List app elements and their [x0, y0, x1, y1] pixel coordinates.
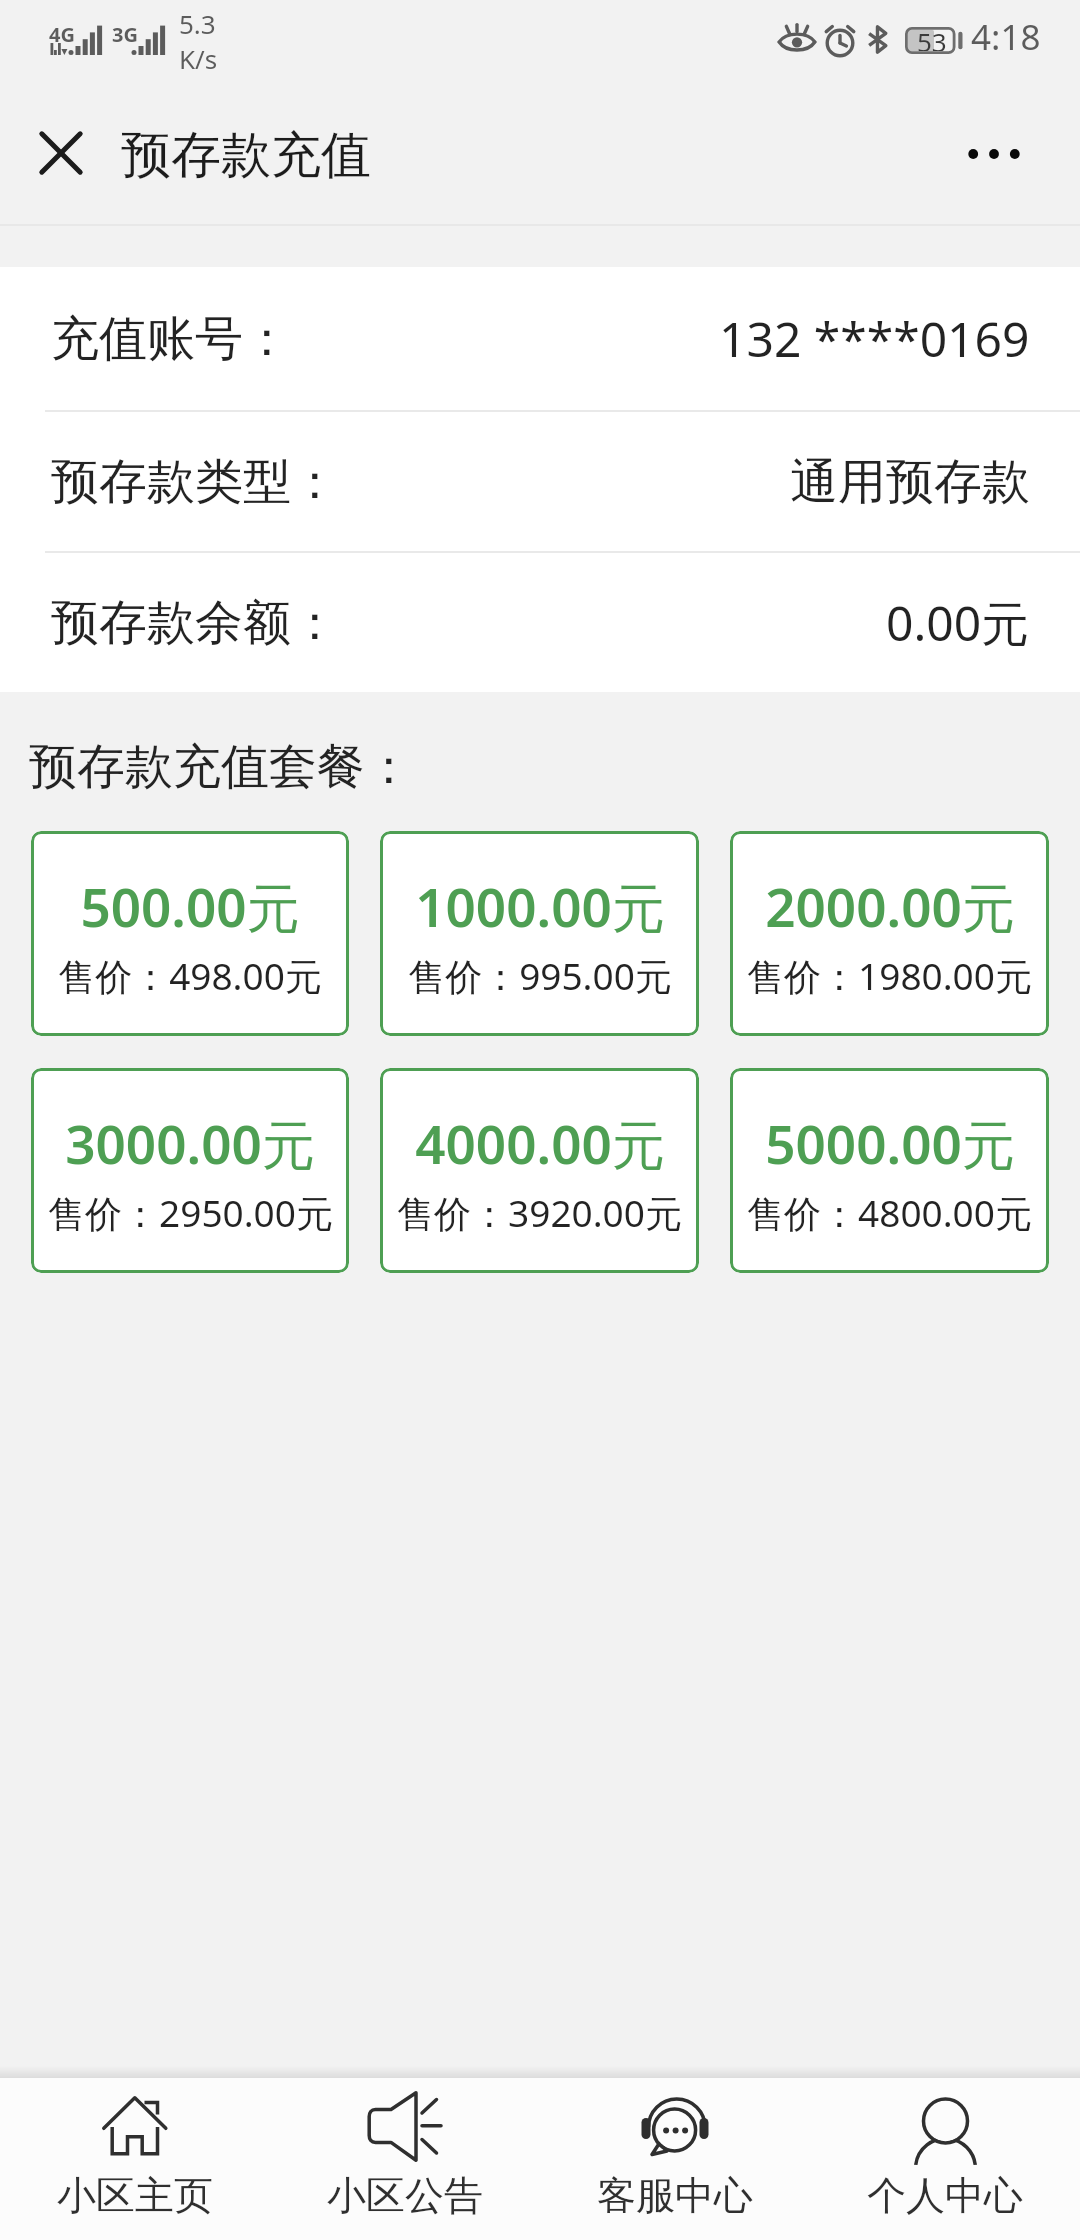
staticText: 500.00元	[80, 870, 300, 942]
staticText: 0.00元	[886, 590, 1030, 656]
other: Eye care	[778, 24, 816, 53]
button[interactable]: 4000.00元	[380, 1068, 699, 1273]
staticText: 预存款充值	[121, 124, 371, 187]
staticText: 1000.00元	[415, 870, 665, 942]
button[interactable]: Close	[0, 95, 121, 224]
button[interactable]: 小区公告	[270, 2078, 540, 2240]
staticText: 3000.00元	[65, 1107, 315, 1179]
staticText: 4:18	[971, 13, 1041, 61]
staticText: 售价：995.00元	[408, 950, 672, 1001]
staticText: 小区公告	[327, 2171, 483, 2220]
staticText: 售价：1980.00元	[747, 950, 1032, 1001]
other: Bluetooth	[865, 26, 891, 53]
staticText: 小区主页	[57, 2171, 213, 2220]
staticText: 售价：3920.00元	[397, 1187, 682, 1238]
button[interactable]: 个人中心	[810, 2078, 1080, 2240]
staticText: 4000.00元	[415, 1107, 665, 1179]
staticText: K/s	[179, 41, 218, 76]
button[interactable]: 500.00元	[31, 831, 349, 1036]
button[interactable]: 1000.00元	[380, 831, 699, 1036]
button[interactable]: More options	[930, 95, 1080, 224]
button[interactable]: 小区主页	[0, 2078, 270, 2240]
staticText: 售价：4800.00元	[747, 1187, 1032, 1238]
staticText: 充值账号：	[51, 309, 291, 369]
staticText: 个人中心	[867, 2171, 1023, 2220]
staticText: 3G	[112, 21, 138, 48]
staticText: 预存款余额：	[51, 593, 339, 653]
other: Alarm	[824, 25, 856, 55]
button[interactable]: 充值账号：	[0, 267, 1080, 410]
staticText: 预存款充值套餐：	[29, 737, 413, 797]
staticText: 53	[917, 24, 947, 51]
staticText: 4G	[49, 21, 75, 48]
staticText: 2000.00元	[765, 870, 1015, 942]
staticText: 5000.00元	[765, 1107, 1015, 1179]
staticText: 售价：498.00元	[58, 950, 322, 1001]
staticText: 通用预存款	[790, 452, 1030, 512]
staticText: 售价：2950.00元	[48, 1187, 333, 1238]
button[interactable]: 5000.00元	[730, 1068, 1049, 1273]
button[interactable]: 2000.00元	[730, 831, 1049, 1036]
button[interactable]: 预存款余额：	[0, 553, 1080, 692]
staticText: 132 ****0169	[719, 306, 1030, 371]
staticText: 预存款类型：	[51, 452, 339, 512]
button[interactable]: 预存款类型：	[0, 412, 1080, 551]
staticText: 5.3	[179, 6, 216, 41]
button[interactable]: 3000.00元	[31, 1068, 349, 1273]
button[interactable]: 客服中心	[540, 2078, 810, 2240]
other: Battery 53 percent	[905, 27, 963, 54]
staticText: 客服中心	[597, 2171, 753, 2220]
